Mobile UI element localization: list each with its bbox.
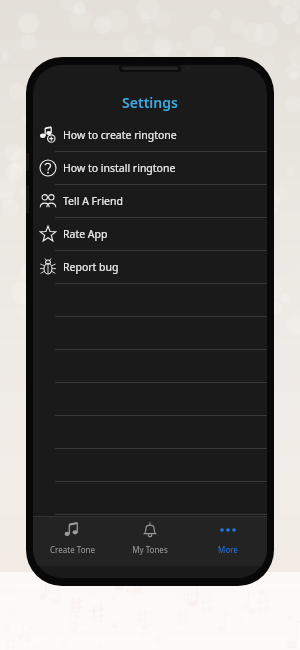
button[interactable]: Rate App: [33, 218, 267, 251]
button[interactable]: Tell A Friend: [33, 185, 267, 218]
staticText: How to create ringtone: [63, 128, 177, 142]
staticText: Report bug: [63, 260, 119, 274]
button[interactable]: [33, 383, 267, 416]
button[interactable]: More: [189, 516, 267, 566]
staticText: My Tones: [132, 544, 168, 555]
button[interactable]: [33, 449, 267, 482]
staticText: Tell A Friend: [63, 194, 123, 208]
staticText: Create Tone: [50, 544, 95, 555]
button[interactable]: How to install ringtone: [33, 152, 267, 185]
button[interactable]: [33, 482, 267, 515]
button[interactable]: My Tones: [111, 516, 189, 566]
button[interactable]: [33, 317, 267, 350]
button[interactable]: [33, 350, 267, 383]
button[interactable]: Create Tone: [33, 516, 111, 566]
button[interactable]: [33, 416, 267, 449]
button[interactable]: How to create ringtone: [33, 119, 267, 152]
button[interactable]: [33, 284, 267, 317]
staticText: Rate App: [63, 227, 108, 241]
staticText: How to install ringtone: [63, 161, 176, 175]
staticText: More: [218, 544, 238, 555]
button[interactable]: Report bug: [33, 251, 267, 284]
staticText: Settings: [122, 93, 178, 112]
